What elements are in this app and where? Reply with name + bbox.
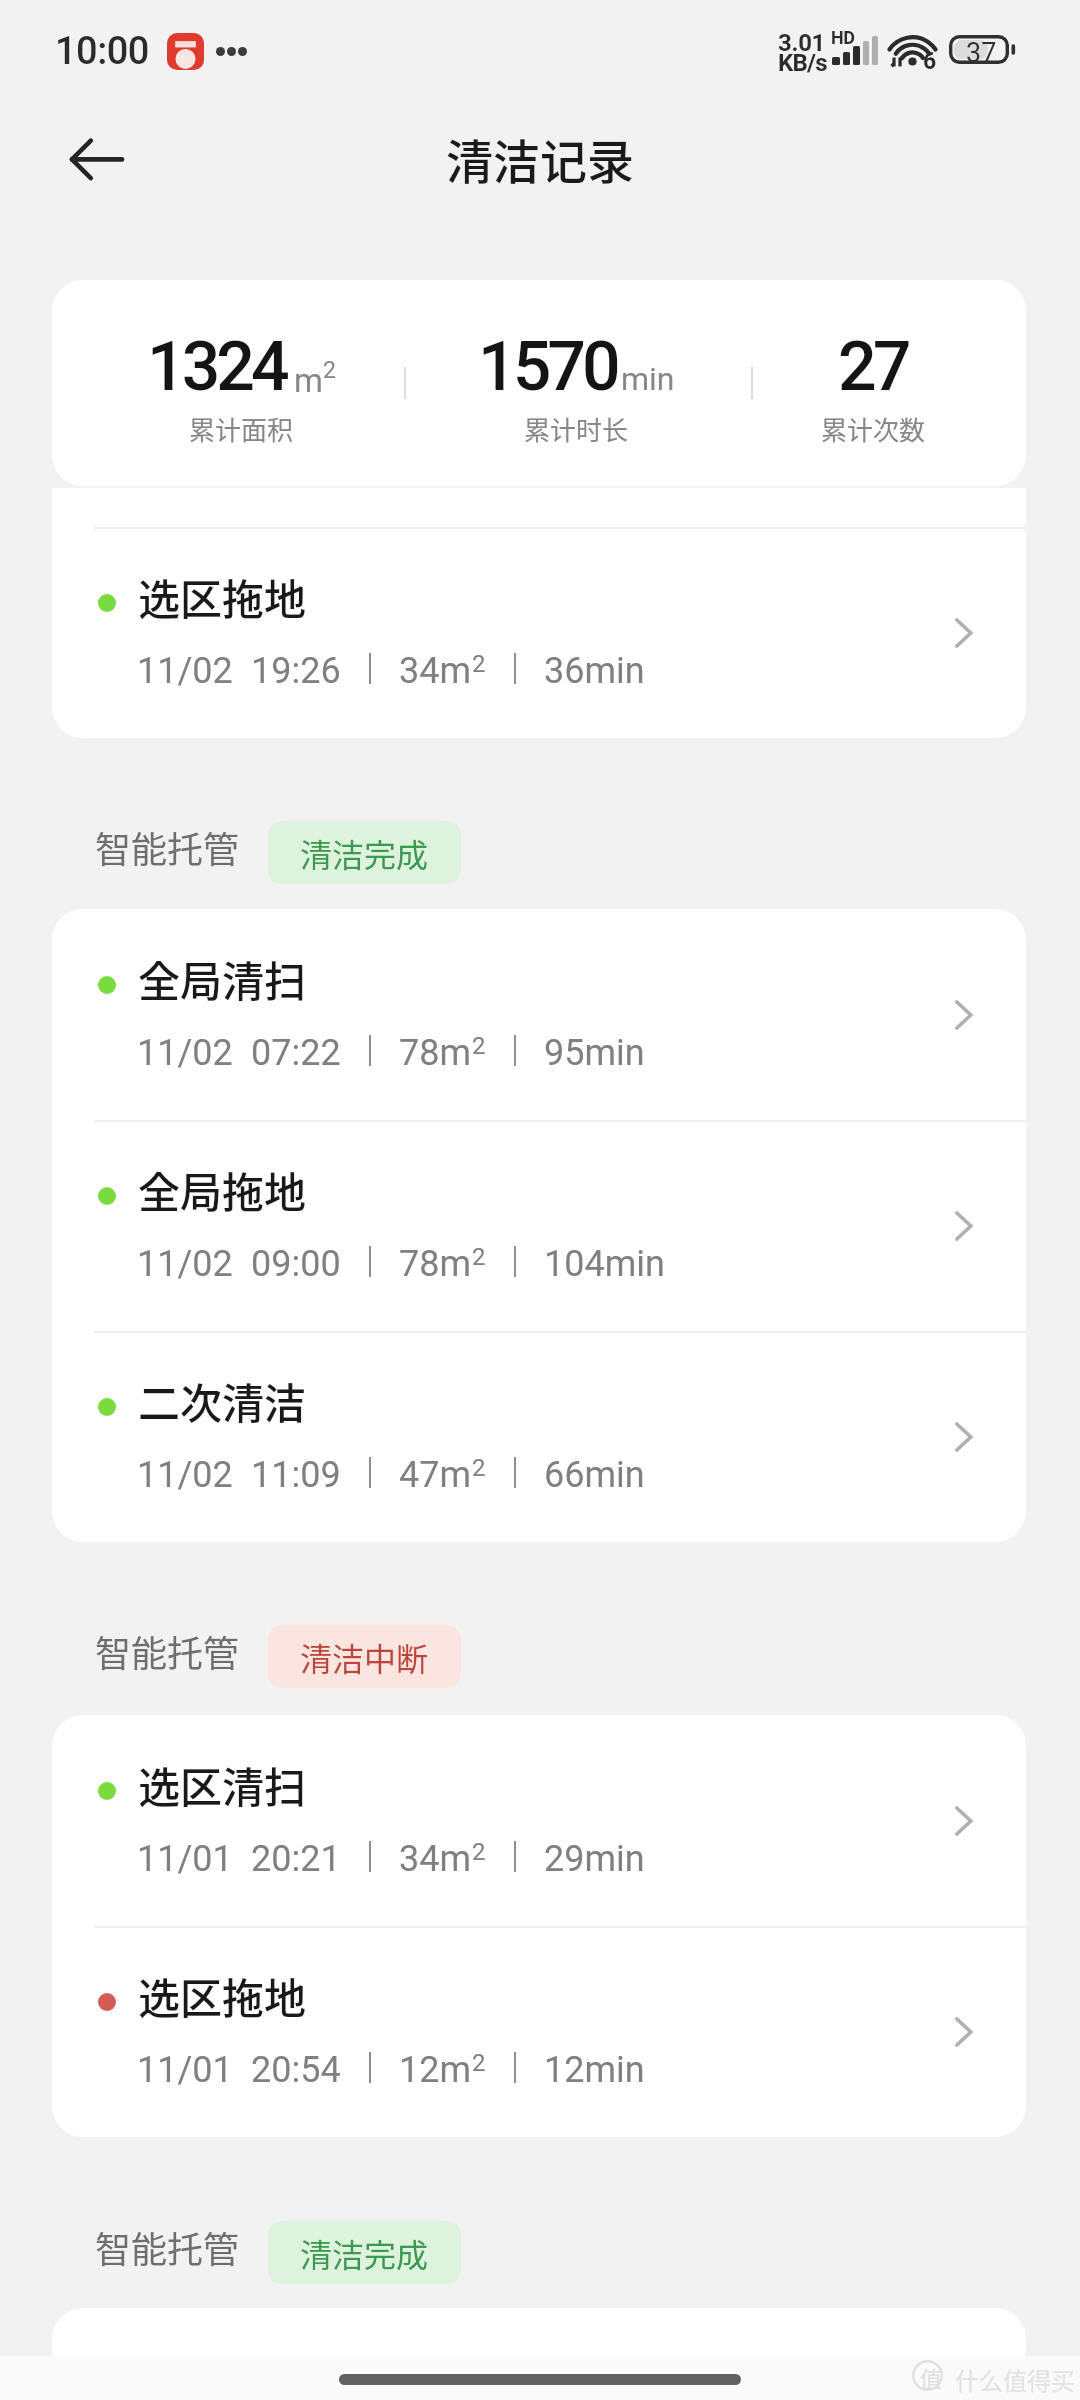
staticText: 全局拖地: [138, 1159, 307, 1220]
staticText: 智能托管: [95, 1625, 240, 1677]
staticText: 34m: [399, 650, 472, 692]
staticText: min: [621, 360, 675, 398]
button[interactable]: 清洁完成: [268, 821, 461, 884]
staticText: 累计次数: [821, 410, 926, 448]
staticText: 2: [323, 357, 336, 384]
staticText: 2: [472, 1032, 486, 1060]
staticText: 95min: [544, 1032, 645, 1074]
staticText: 2: [472, 1454, 486, 1482]
other: Open record: [948, 615, 984, 651]
staticText: 07:22: [251, 1032, 341, 1074]
staticText: 选区清扫: [138, 1754, 307, 1815]
button[interactable]: 选区清扫: [52, 1715, 1026, 1926]
staticText: 11/02: [137, 650, 233, 692]
staticText: 11/02: [137, 1243, 233, 1285]
staticText: 清洁完成: [300, 830, 429, 876]
button[interactable]: 全局清扫: [52, 909, 1026, 1120]
staticText: 37: [966, 37, 997, 69]
staticText: 11/01: [137, 2049, 233, 2091]
staticText: 10:00: [55, 29, 149, 74]
staticText: 11:09: [251, 1454, 341, 1496]
staticText: 1324: [147, 327, 286, 407]
button[interactable]: 清洁完成: [268, 2221, 461, 2284]
other: Open record: [948, 1803, 984, 1839]
staticText: 27: [838, 327, 908, 407]
button[interactable]: 选区拖地: [52, 527, 1026, 738]
other: Open record: [948, 2014, 984, 2050]
staticText: 3.01: [778, 29, 826, 57]
staticText: 什么值得买: [955, 2362, 1075, 2397]
staticText: 19:26: [251, 650, 341, 692]
staticText: 36min: [544, 650, 645, 692]
button[interactable]: 清洁中断: [268, 1625, 461, 1688]
staticText: 1570: [478, 327, 617, 407]
staticText: 78m: [399, 1032, 472, 1074]
staticText: 累计时长: [524, 410, 629, 448]
staticText: 2: [472, 2049, 486, 2077]
staticText: 20:21: [251, 1838, 341, 1880]
staticText: 2: [472, 1243, 486, 1271]
staticText: 47m: [399, 1454, 472, 1496]
staticText: 二次清洁: [138, 1370, 307, 1431]
staticText: 清洁记录: [446, 124, 634, 192]
staticText: 清洁中断: [300, 1634, 429, 1680]
other: Open record: [948, 997, 984, 1033]
staticText: 值: [920, 2361, 943, 2392]
staticText: 智能托管: [95, 821, 240, 873]
staticText: m: [294, 361, 323, 400]
other: Open record: [948, 1419, 984, 1455]
staticText: 34m: [399, 1838, 472, 1880]
button[interactable]: 选区拖地: [52, 1926, 1026, 2137]
button[interactable]: Back: [56, 119, 136, 199]
staticText: 2: [472, 650, 486, 678]
staticText: 选区拖地: [138, 1965, 307, 2026]
staticText: 智能托管: [95, 2221, 240, 2273]
staticText: 29min: [544, 1838, 645, 1880]
staticText: 选区拖地: [138, 566, 307, 627]
button[interactable]: 二次清洁: [52, 1331, 1026, 1542]
other: Wi-Fi: [888, 26, 940, 68]
staticText: 20:54: [251, 2049, 341, 2091]
staticText: 11/02: [137, 1032, 233, 1074]
staticText: 全局清扫: [138, 948, 307, 1009]
staticText: HD: [831, 27, 855, 48]
staticText: 2: [472, 1838, 486, 1866]
staticText: 78m: [399, 1243, 472, 1285]
staticText: 11/02: [137, 1454, 233, 1496]
staticText: 12min: [544, 2049, 645, 2091]
staticText: 6: [923, 48, 937, 75]
staticText: 104min: [544, 1243, 665, 1285]
other: Open record: [948, 1208, 984, 1244]
staticText: 累计面积: [189, 410, 294, 448]
button[interactable]: 全局拖地: [52, 1120, 1026, 1331]
staticText: 12m: [399, 2049, 472, 2091]
staticText: 66min: [544, 1454, 645, 1496]
staticText: KB/s: [778, 49, 827, 77]
staticText: 09:00: [251, 1243, 341, 1285]
staticText: 11/01: [137, 1838, 233, 1880]
staticText: 清洁完成: [300, 2230, 429, 2276]
other: Battery 37 percent: [949, 35, 1019, 67]
